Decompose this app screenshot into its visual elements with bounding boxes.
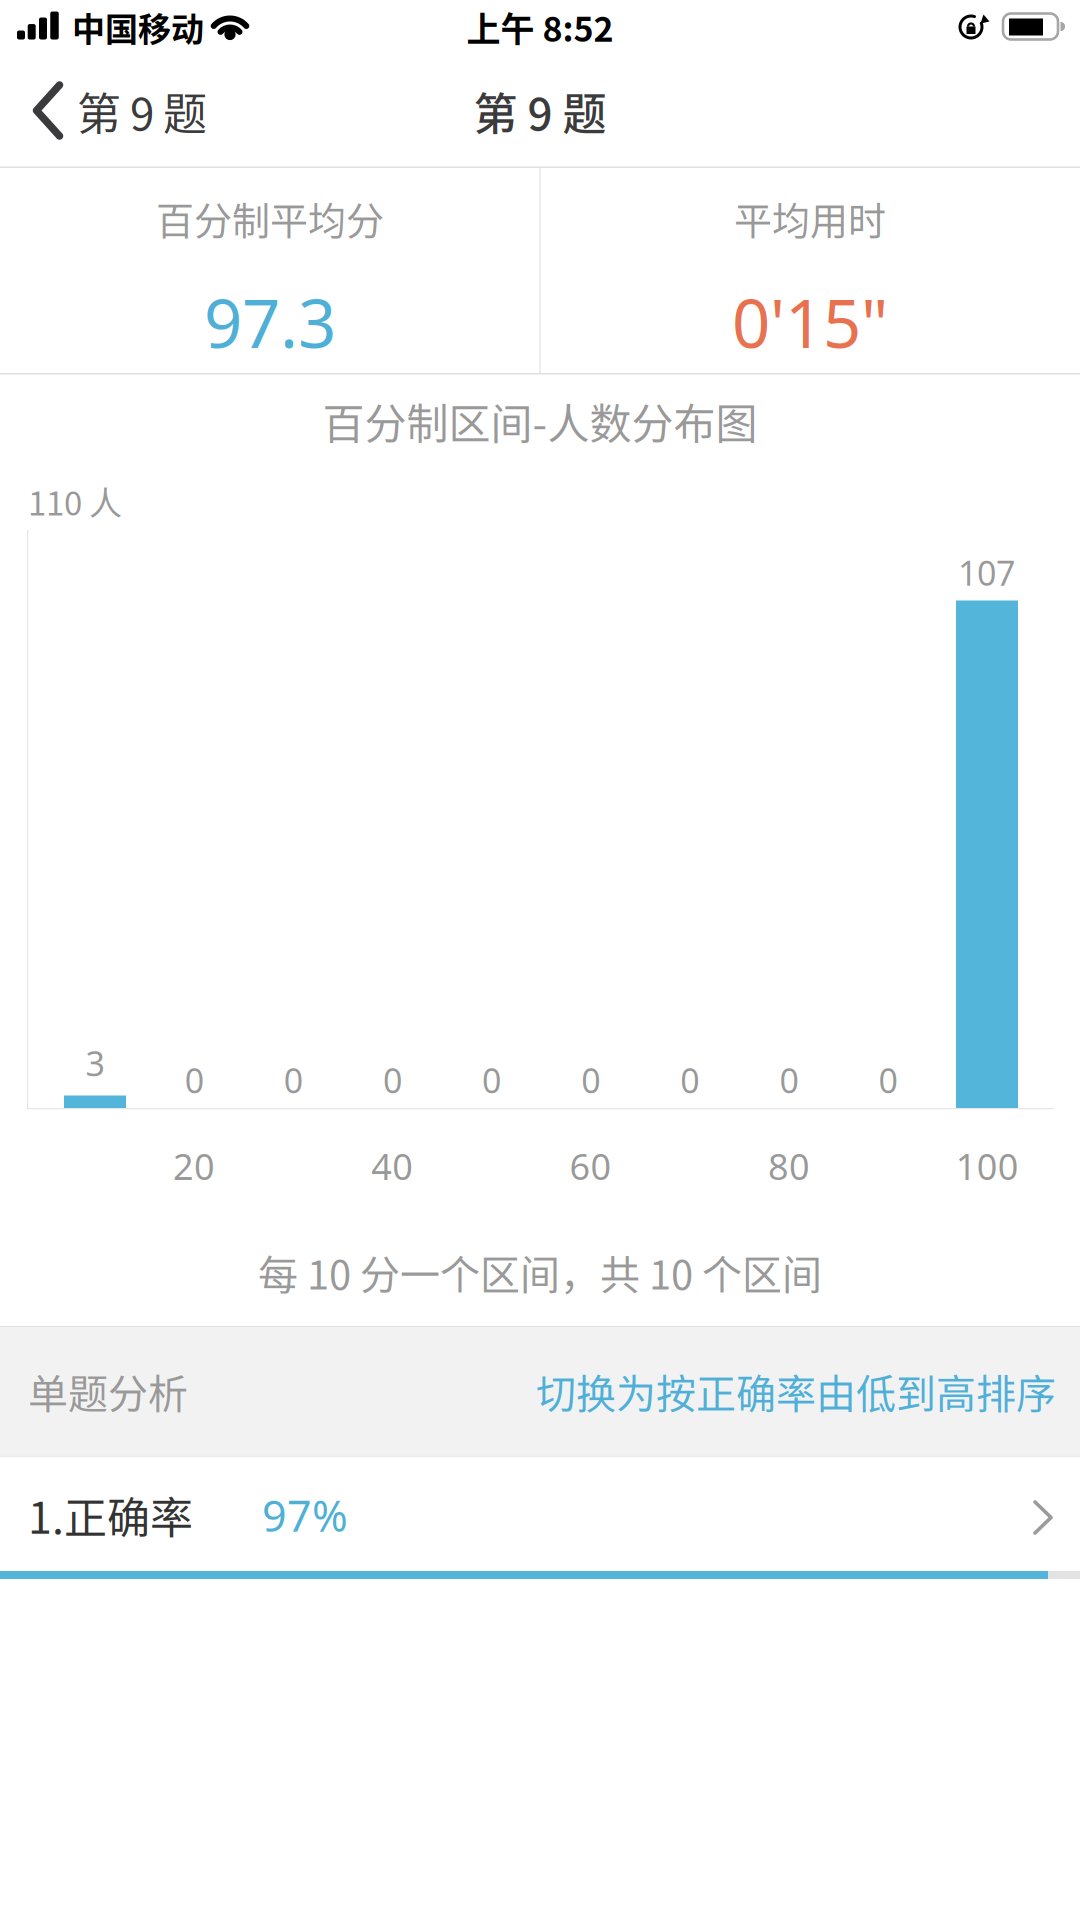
staticText: 80 (768, 1141, 810, 1190)
staticText: 60 (570, 1141, 612, 1190)
staticText: 3 (85, 1040, 104, 1086)
staticText: 每 10 分一个区间，共 10 个区间 (258, 1243, 822, 1301)
staticText: 0 (482, 1057, 501, 1103)
staticText: 97.3 (204, 276, 336, 368)
staticText: 0 (878, 1057, 897, 1103)
staticText: 单题分析 (28, 1362, 188, 1420)
staticText: 切换为按正确率由低到高排序 (536, 1362, 1056, 1420)
staticText: 97% (262, 1486, 348, 1544)
staticText: 百分制平均分 (156, 190, 384, 245)
staticText: 107 (958, 549, 1015, 596)
staticText: 110 人 (28, 477, 122, 525)
staticText: 40 (371, 1141, 413, 1190)
staticText: 第 9 题 (473, 79, 606, 143)
staticText: 上午 8:52 (466, 2, 613, 52)
staticText: 0 (680, 1057, 699, 1103)
staticText: 平均用时 (734, 190, 886, 245)
staticText: 0 (779, 1057, 798, 1103)
staticText: 0 (185, 1057, 204, 1103)
staticText: 1.正确率 (28, 1484, 193, 1546)
staticText: 0 (383, 1057, 402, 1103)
staticText: 第 9 题 (77, 79, 207, 143)
staticText: 100 (956, 1141, 1019, 1190)
staticText: 0 (284, 1057, 303, 1103)
staticText: 0 (581, 1057, 600, 1103)
staticText: 中国移动 (72, 3, 204, 51)
staticText: 20 (173, 1141, 215, 1190)
staticText: 百分制区间-人数分布图 (322, 391, 757, 451)
staticText: 0'15" (732, 276, 888, 368)
